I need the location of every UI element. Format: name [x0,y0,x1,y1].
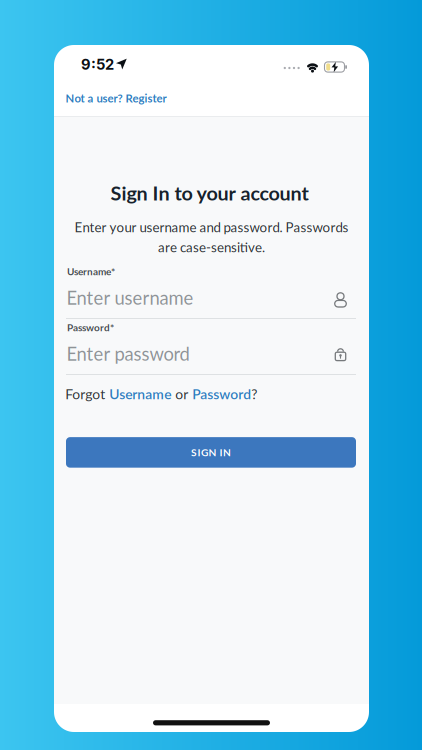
staticText: or [171,385,192,402]
staticText: Sign In to your account [110,181,308,205]
staticText: Enter your username and password. Passwo… [74,219,348,235]
staticText: Forgot [65,385,109,402]
button[interactable]: Not a user? Register [65,91,166,105]
staticText: Enter username [66,287,193,309]
button[interactable]: Enter password [66,342,356,378]
button[interactable]: Username [109,385,171,402]
staticText: Username [109,385,171,402]
staticText: are case-sensitive. [158,239,265,255]
button[interactable]: Enter username [66,286,356,322]
button[interactable]: Password [192,385,251,402]
staticText: Enter password [66,343,189,365]
staticText: SIGN IN [191,446,231,458]
staticText: Username* [67,265,115,277]
button[interactable]: SIGN IN [66,437,356,468]
staticText: Password* [67,321,114,333]
staticText: Not a user? Register [65,91,166,105]
staticText: 9:52 [81,55,114,73]
staticText: ? [251,385,257,402]
staticText: Password [192,385,251,402]
